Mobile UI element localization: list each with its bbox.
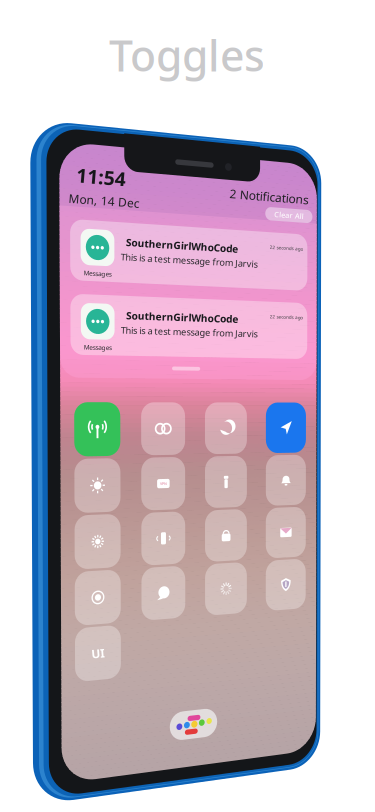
button[interactable]: Clear All [0, 0, 375, 812]
button[interactable]: Mail [0, 0, 375, 812]
button[interactable]: Flashlight [0, 0, 375, 812]
button[interactable]: VPN [0, 0, 375, 812]
button[interactable]: Vibrate [0, 0, 375, 812]
button[interactable]: Lock [0, 0, 375, 812]
staticText: 11:54 [65, 158, 137, 195]
button[interactable]: Loading [0, 0, 375, 812]
button[interactable]: Screen Record [0, 0, 375, 812]
staticText: Clear All [268, 208, 311, 222]
staticText: This is a test message from Jarvis [89, 323, 289, 341]
button[interactable]: Brightness [0, 0, 375, 812]
button[interactable]: AirDrop [0, 0, 375, 812]
button[interactable]: Night Shift [0, 0, 375, 812]
staticText: Messages [77, 267, 118, 280]
button[interactable]: Messages [0, 0, 375, 812]
button[interactable]: Messages [0, 0, 375, 812]
staticText: 22 seconds ago [262, 313, 311, 321]
staticText: Mon, 14 Dec [52, 189, 155, 212]
staticText: Messages [77, 341, 118, 354]
button[interactable]: Alerts [0, 0, 375, 812]
button[interactable]: Cellular [0, 0, 375, 812]
staticText: VPN [158, 480, 168, 487]
button[interactable]: Messages [0, 0, 375, 812]
button[interactable]: Shield [0, 0, 375, 812]
staticText: 22 seconds ago [262, 244, 311, 252]
staticText: SouthernGirlWhoCode [100, 236, 264, 255]
button[interactable]: UI [0, 0, 375, 812]
staticText: This is a test message from Jarvis [89, 251, 289, 269]
staticText: Toggles [109, 27, 265, 83]
staticText: 2 Notifications [212, 185, 327, 208]
staticText: SouthernGirlWhoCode [100, 307, 264, 327]
button[interactable]: Do Not Disturb [0, 0, 375, 812]
button[interactable]: Location [0, 0, 375, 812]
staticText: UI [88, 642, 108, 665]
